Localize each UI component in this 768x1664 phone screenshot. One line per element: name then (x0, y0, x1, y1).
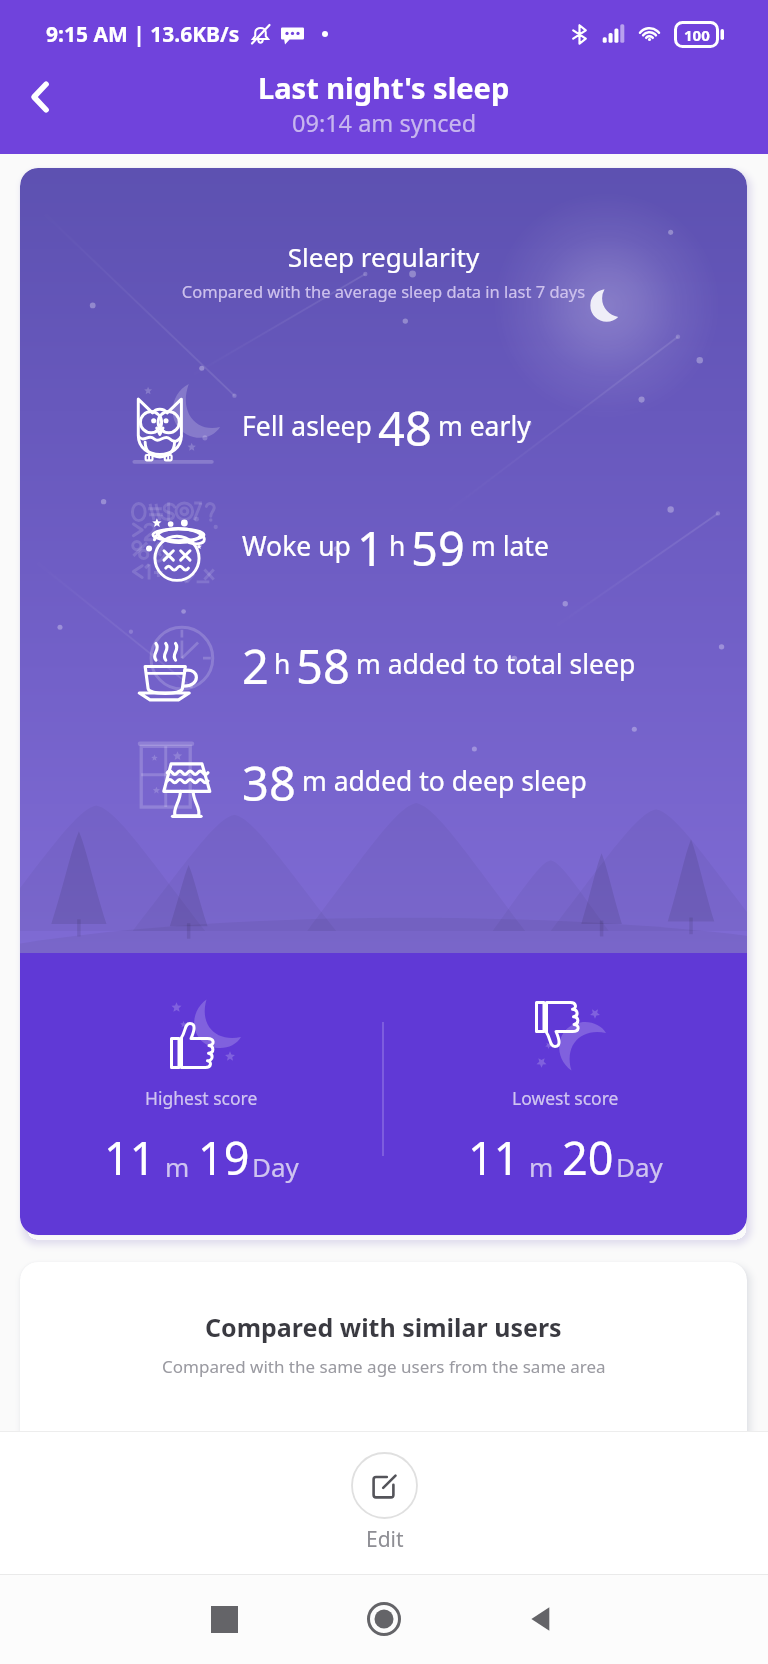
staticText: Highest score (145, 1086, 258, 1110)
staticText: Lowest score (512, 1086, 619, 1110)
staticText: 20 (562, 1127, 614, 1188)
staticText: m late (471, 528, 549, 564)
staticText: 48 (378, 396, 432, 448)
button[interactable]: Back (12, 68, 70, 126)
staticText: m (529, 1149, 554, 1184)
staticText: Last night's sleep (258, 68, 510, 107)
button[interactable]: Edit (351, 1452, 418, 1554)
button[interactable]: Home (351, 1586, 417, 1652)
staticText: 59 (411, 516, 465, 568)
staticText: 09:14 am synced (292, 107, 477, 139)
staticText: 11 (104, 1127, 156, 1188)
staticText: 9:15 AM | 13.6KB/s (46, 20, 240, 49)
button[interactable]: Recents (191, 1586, 257, 1652)
staticText: 100 (684, 25, 710, 45)
staticText: Woke up (242, 528, 351, 564)
staticText: 2 (242, 634, 269, 686)
staticText: Day (616, 1149, 663, 1184)
button[interactable]: Back (508, 1586, 574, 1652)
staticText: m (165, 1149, 190, 1184)
staticText: Sleep regularity (20, 239, 747, 274)
staticText: m added to total sleep (356, 646, 636, 682)
staticText: 1 (357, 516, 384, 568)
staticText: Edit (366, 1525, 404, 1554)
staticText: h (389, 528, 406, 564)
staticText: 11 (468, 1127, 520, 1188)
button[interactable]: Lowest score (384, 985, 747, 1188)
staticText: Day (252, 1149, 299, 1184)
staticText: Fell asleep (242, 408, 372, 444)
staticText: h (274, 646, 291, 682)
staticText: Compared with the average sleep data in … (20, 280, 747, 302)
button[interactable]: Highest score (20, 985, 382, 1188)
staticText: m early (438, 408, 531, 444)
staticText: 58 (296, 634, 350, 686)
staticText: m added to deep sleep (302, 763, 587, 799)
staticText: Compared with similar users (205, 1310, 562, 1344)
staticText: 19 (198, 1127, 250, 1188)
staticText: Compared with the same age users from th… (162, 1355, 606, 1378)
staticText: 38 (242, 751, 296, 803)
